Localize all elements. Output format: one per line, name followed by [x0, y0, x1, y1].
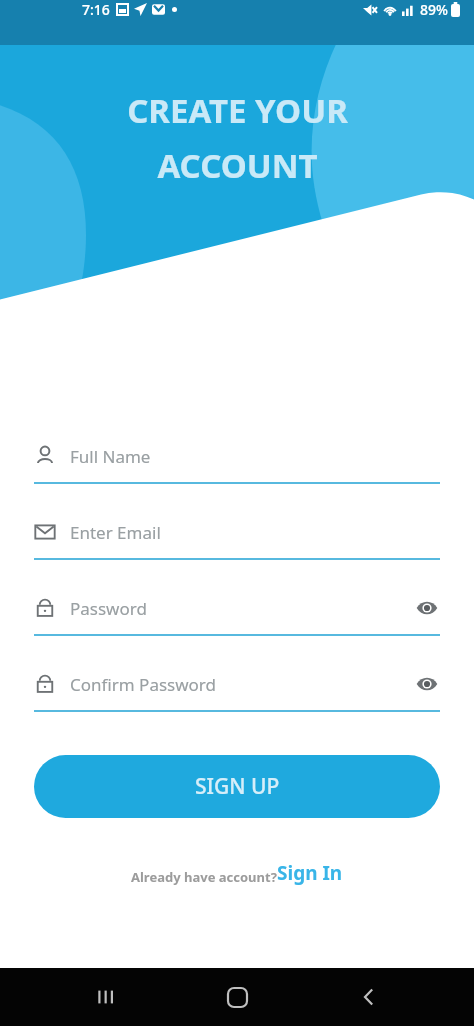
- button[interactable]: Full Name: [34, 436, 440, 484]
- staticText: Full Name: [70, 445, 151, 468]
- staticText: 7:16: [82, 0, 110, 19]
- staticText: Password: [70, 597, 147, 620]
- button[interactable]: Home: [211, 971, 263, 1023]
- staticText: Already have account?: [131, 868, 277, 886]
- staticText: Enter Email: [70, 521, 161, 544]
- staticText: Sign In: [277, 860, 343, 886]
- staticText: SIGN UP: [195, 772, 280, 801]
- button[interactable]: Sign In: [277, 860, 343, 886]
- staticText: 89%: [420, 0, 448, 19]
- button[interactable]: Back: [343, 971, 395, 1023]
- button[interactable]: Show password: [414, 595, 440, 621]
- button[interactable]: Password: [34, 588, 440, 636]
- button[interactable]: Enter Email: [34, 512, 440, 560]
- staticText: CREATE YOUR: [127, 88, 348, 133]
- staticText: ACCOUNT: [157, 143, 318, 188]
- staticText: Confirm Password: [70, 673, 216, 696]
- button[interactable]: Recent apps: [80, 971, 132, 1023]
- button[interactable]: Confirm Password: [34, 664, 440, 712]
- button[interactable]: SIGN UP: [34, 755, 440, 818]
- button[interactable]: Show password: [414, 671, 440, 697]
